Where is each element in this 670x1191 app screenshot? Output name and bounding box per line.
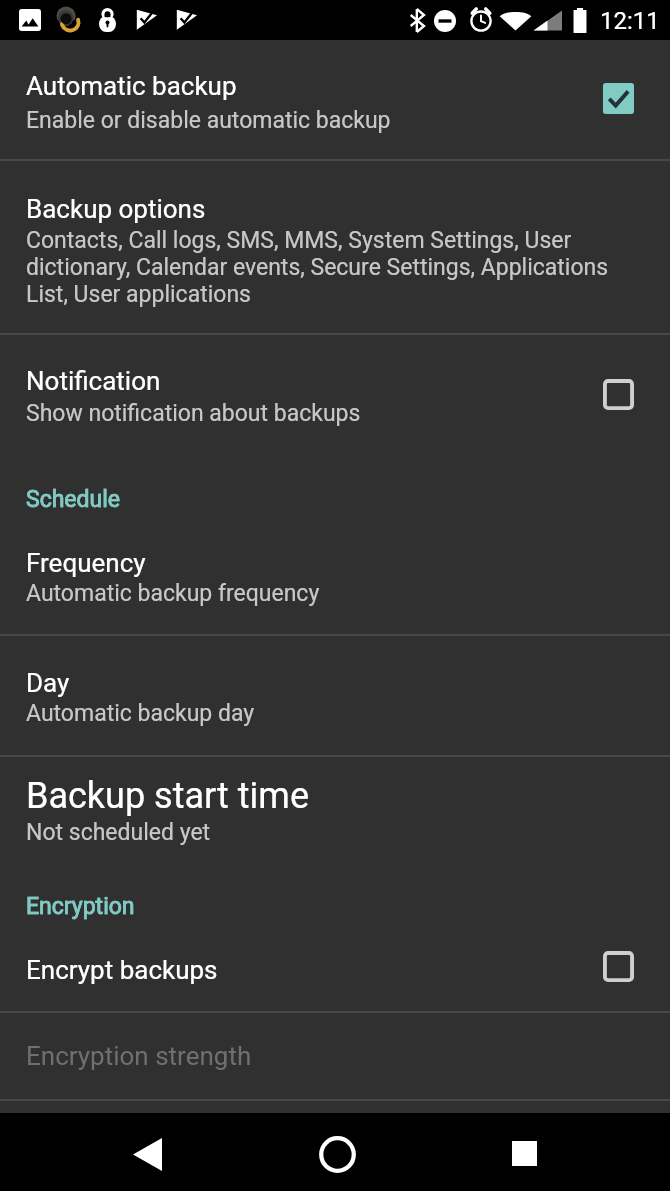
staticText: Automatic backup — [26, 71, 237, 101]
button[interactable]: Frequency — [0, 513, 670, 634]
button[interactable]: Home — [279, 1113, 395, 1191]
button[interactable]: Toggle Notification — [603, 379, 634, 410]
staticText: Backup start time — [26, 775, 310, 817]
staticText: Automatic backup day — [26, 700, 255, 727]
staticText: Encryption — [26, 893, 135, 920]
staticText: Enable or disable automatic backup — [26, 107, 391, 134]
button[interactable]: Backup start time — [0, 757, 670, 846]
button[interactable]: Encryption strength — [0, 1013, 670, 1099]
button[interactable]: Toggle Automatic backup — [603, 83, 634, 114]
button[interactable]: Notification — [0, 335, 670, 427]
button[interactable]: Day — [0, 636, 670, 755]
staticText: Schedule — [26, 486, 120, 513]
staticText: Contacts, Call logs, SMS, MMS, System Se… — [26, 227, 620, 308]
button[interactable]: Back — [90, 1113, 206, 1191]
button[interactable]: Recent apps — [466, 1113, 582, 1191]
staticText: Backup options — [26, 194, 206, 224]
staticText: Encrypt backups — [26, 955, 218, 985]
staticText: 12:11 — [600, 7, 660, 35]
staticText: Encryption — [26, 893, 135, 920]
staticText: Encryption strength — [26, 1041, 252, 1071]
staticText: Schedule — [26, 486, 120, 513]
staticText: Day — [26, 668, 70, 698]
staticText: Frequency — [26, 548, 146, 578]
button[interactable]: Toggle Encrypt backups — [603, 951, 634, 982]
staticText: Notification — [26, 366, 161, 396]
staticText: Automatic backup frequency — [26, 580, 320, 607]
staticText: Not scheduled yet — [26, 819, 211, 846]
staticText: Show notification about backups — [26, 400, 361, 427]
button[interactable]: Automatic backup — [0, 40, 670, 159]
button[interactable]: Encrypt backups — [0, 920, 670, 1011]
button[interactable]: Backup options — [0, 161, 670, 333]
